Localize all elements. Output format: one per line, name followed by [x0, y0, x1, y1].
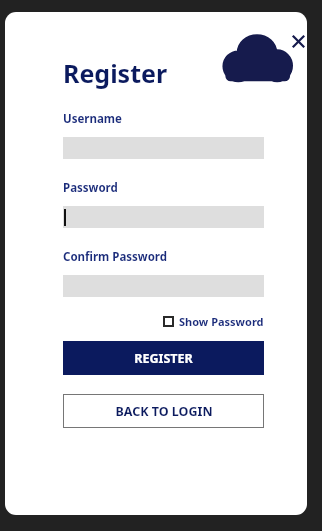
button[interactable]: Close [283, 26, 307, 56]
button[interactable]: REGISTER [63, 341, 264, 375]
staticText: BACK TO LOGIN [115, 403, 213, 420]
button[interactable]: Show Password [163, 314, 264, 329]
staticText: Confirm Password [63, 249, 168, 265]
staticText: REGISTER [134, 350, 193, 367]
staticText: Password [63, 180, 118, 196]
staticText: Register [63, 56, 168, 90]
button[interactable] [63, 206, 264, 228]
staticText: Show Password [179, 314, 264, 329]
button[interactable]: BACK TO LOGIN [63, 394, 264, 428]
staticText: Username [63, 111, 122, 127]
